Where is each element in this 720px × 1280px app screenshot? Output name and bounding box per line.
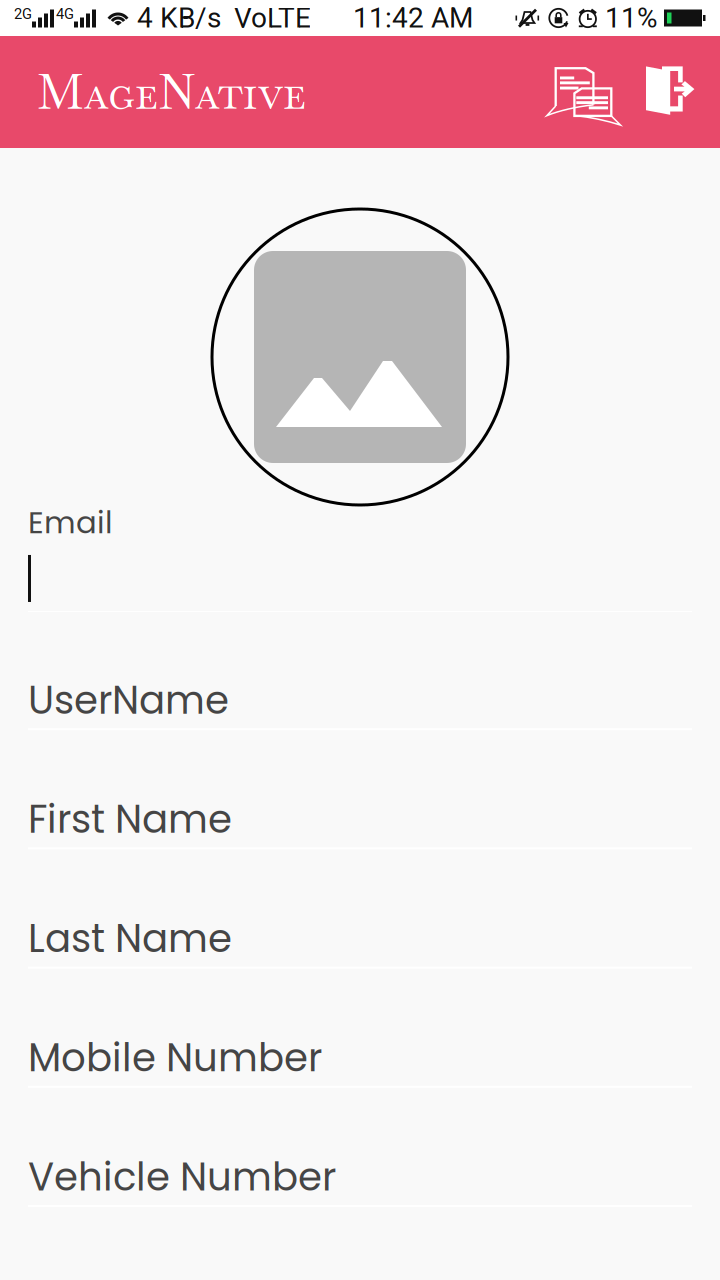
button[interactable]: Last Name: [28, 849, 692, 969]
button[interactable]: Email: [28, 506, 692, 607]
staticText: 11%: [605, 2, 658, 34]
staticText: 4 KB/s: [137, 2, 221, 34]
button[interactable]: First Name: [28, 730, 692, 849]
staticText: UserName: [28, 673, 229, 727]
staticText: Email: [28, 501, 113, 544]
staticText: Last Name: [28, 911, 232, 966]
staticText: 4G: [56, 5, 74, 23]
staticText: 2G: [14, 5, 32, 23]
staticText: 11:42 AM: [353, 2, 473, 34]
staticText: MageNative: [37, 61, 306, 123]
staticText: VoLTE: [234, 2, 311, 34]
button[interactable]: Mobile Number: [28, 969, 692, 1088]
staticText: First Name: [28, 792, 232, 846]
button[interactable]: Log out: [632, 36, 708, 148]
button[interactable]: Messages: [536, 36, 632, 148]
staticText: Vehicle Number: [28, 1150, 336, 1204]
staticText: Mobile Number: [28, 1031, 322, 1085]
button[interactable]: Vehicle Number: [28, 1088, 692, 1207]
button[interactable]: Profile photo: [212, 209, 508, 505]
button[interactable]: UserName: [28, 611, 692, 730]
